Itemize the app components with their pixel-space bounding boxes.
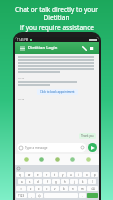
- button[interactable]: a: [18, 179, 25, 184]
- button[interactable]: v: [51, 186, 59, 191]
- button[interactable]: u: [67, 172, 74, 177]
- button[interactable]: o: [83, 172, 90, 177]
- staticText: m: [81, 187, 84, 191]
- staticText: s: [29, 180, 31, 184]
- button[interactable]: j: [70, 179, 78, 184]
- staticText: f: [47, 180, 48, 184]
- button[interactable]: e: [34, 172, 42, 177]
- staticText: Thank you: [81, 134, 94, 138]
- button[interactable]: n: [69, 186, 77, 191]
- button[interactable]: Suggestion 1: [22, 155, 31, 164]
- button[interactable]: Enter: [87, 193, 98, 198]
- button[interactable]: t: [51, 172, 58, 177]
- staticText: Dietitian Login: [28, 45, 58, 51]
- staticText: q: [19, 173, 21, 177]
- staticText: g: [55, 180, 57, 184]
- button[interactable]: b: [60, 186, 68, 191]
- staticText: h: [64, 180, 66, 184]
- button[interactable]: g: [52, 179, 60, 184]
- button[interactable]: p: [91, 172, 98, 177]
- staticText: Type a message: [25, 146, 48, 150]
- staticText: y: [62, 173, 64, 177]
- staticText: u: [70, 173, 72, 177]
- button[interactable]: z: [27, 186, 34, 191]
- button[interactable]: f: [43, 179, 51, 184]
- button[interactable]: ⇧: [16, 186, 26, 191]
- button[interactable]: ☺: [36, 193, 43, 198]
- button[interactable]: r: [43, 172, 50, 177]
- staticText: 12:14: [18, 76, 25, 79]
- button[interactable]: Type a message: [17, 143, 86, 152]
- button[interactable]: Video call: [88, 44, 96, 52]
- staticText: r: [46, 173, 48, 177]
- staticText: ⇧: [20, 187, 23, 190]
- button[interactable]: k: [79, 179, 87, 184]
- button[interactable]: y: [59, 172, 66, 177]
- button[interactable]: Suggestion 2: [37, 155, 46, 164]
- staticText: ☺: [38, 194, 41, 197]
- staticText: j: [74, 180, 75, 184]
- staticText: p: [94, 173, 96, 177]
- staticText: e: [37, 173, 39, 177]
- staticText: Click to book appointment: [40, 90, 75, 94]
- button[interactable]: c: [43, 186, 50, 191]
- staticText: t: [54, 173, 56, 177]
- staticText: v: [54, 187, 56, 191]
- staticText: ⌫: [91, 187, 95, 190]
- staticText: if you require assistance: [20, 23, 94, 32]
- staticText: i: [78, 173, 79, 177]
- button[interactable]: h: [61, 179, 69, 184]
- staticText: 11:45 PM: [17, 38, 29, 42]
- staticText: 12:16: [18, 97, 25, 100]
- button[interactable]: q: [16, 172, 24, 177]
- button[interactable]: Click to book appointment: [18, 89, 96, 95]
- button[interactable]: ,: [28, 193, 35, 198]
- staticText: l: [92, 180, 93, 184]
- staticText: Chat or talk directly to your Dietitian: [4, 5, 109, 22]
- button[interactable]: w: [25, 172, 33, 177]
- button[interactable]: l: [88, 179, 96, 184]
- button[interactable]: x: [35, 186, 42, 191]
- staticText: ,: [31, 194, 32, 198]
- button[interactable]: Call: [80, 44, 88, 52]
- staticText: a: [21, 180, 23, 184]
- staticText: n: [72, 187, 74, 191]
- staticText: x: [38, 187, 40, 191]
- button[interactable]: Send: [88, 143, 97, 152]
- staticText: z: [30, 187, 32, 191]
- staticText: .: [82, 194, 83, 198]
- button[interactable]: Suggestion 5: [84, 155, 93, 164]
- button[interactable]: m: [78, 186, 86, 191]
- button[interactable]: i: [75, 172, 82, 177]
- button[interactable]: d: [34, 179, 42, 184]
- staticText: b: [63, 187, 65, 191]
- staticText: k: [82, 180, 84, 184]
- staticText: o: [86, 173, 88, 177]
- staticText: d: [37, 180, 39, 184]
- staticText: ?123: [18, 194, 25, 198]
- button[interactable]: Suggestion 3: [53, 155, 62, 164]
- button[interactable]: ?123: [16, 193, 27, 198]
- button[interactable]: .: [79, 193, 86, 198]
- button[interactable]: Menu: [18, 44, 26, 52]
- button[interactable]: ⌫: [87, 186, 98, 191]
- button[interactable]: Suggestion 4: [68, 155, 77, 164]
- button[interactable]: s: [26, 179, 33, 184]
- staticText: c: [46, 187, 48, 191]
- staticText: w: [28, 173, 31, 177]
